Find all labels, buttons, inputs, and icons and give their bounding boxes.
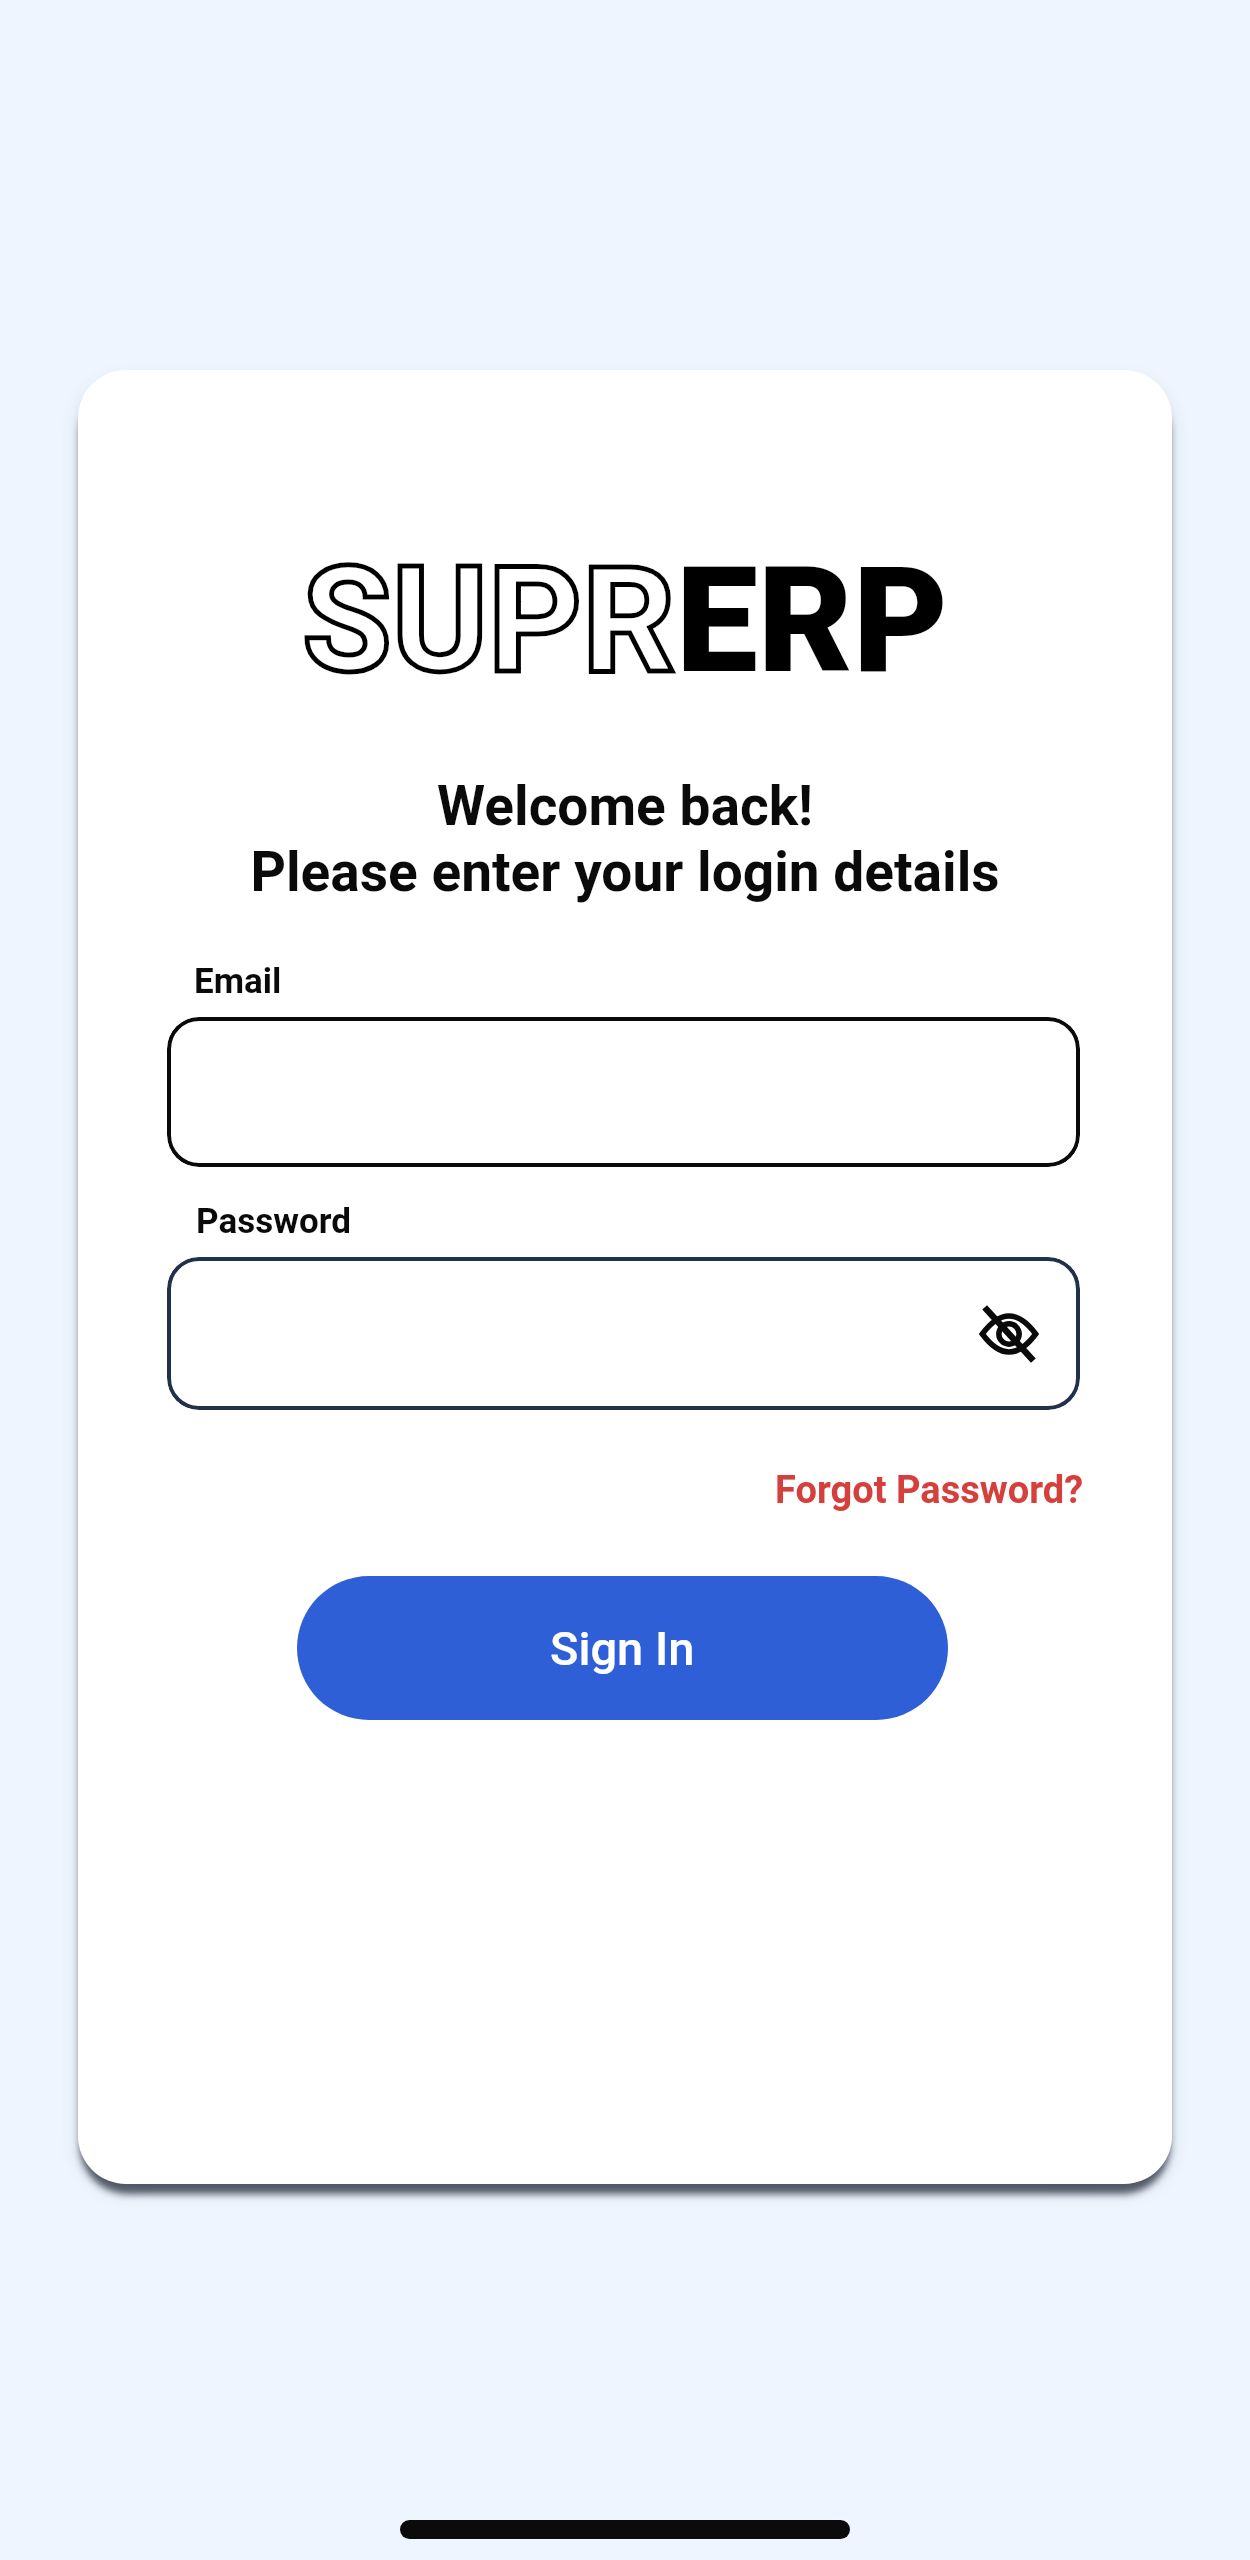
button[interactable]: Forgot Password?: [775, 1468, 1084, 1513]
staticText: Welcome back! Please enter your login de…: [78, 774, 1172, 905]
staticText: Password: [196, 1201, 351, 1242]
staticText: ERP: [676, 536, 949, 707]
button[interactable]: [167, 1257, 1080, 1410]
button[interactable]: [167, 1017, 1080, 1167]
staticText: SUPR: [302, 536, 676, 707]
button[interactable]: Sign In: [297, 1576, 948, 1720]
staticText: Sign In: [550, 1621, 695, 1676]
staticText: Email: [194, 961, 282, 1002]
